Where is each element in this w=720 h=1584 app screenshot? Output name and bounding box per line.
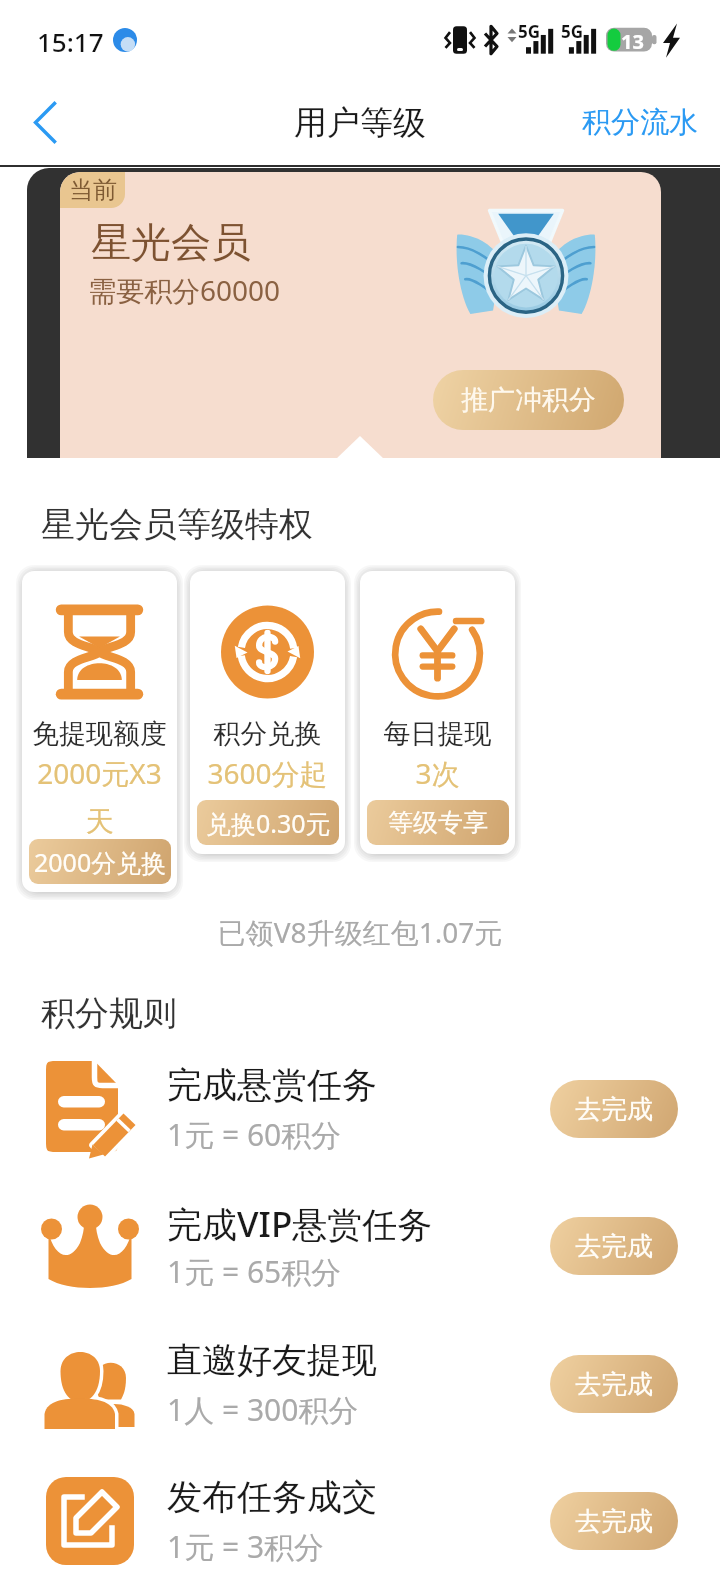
button[interactable]: Back	[0, 78, 90, 167]
button[interactable]: 免提现额度	[22, 571, 177, 892]
staticText: 用户等级	[294, 102, 426, 144]
button[interactable]: 发布任务成交	[0, 1453, 720, 1584]
staticText: 去完成	[575, 1368, 653, 1401]
staticText: 去完成	[575, 1093, 653, 1126]
staticText: 3次	[364, 754, 511, 792]
staticText: 3600分起	[194, 754, 341, 792]
staticText: 积分兑换	[190, 717, 345, 751]
staticText: 直邀好友提现	[167, 1338, 377, 1382]
button[interactable]: 当前	[60, 172, 661, 458]
staticText: 1元 = 65积分	[167, 1251, 342, 1292]
staticText: 2000元X3天	[26, 754, 173, 839]
staticText: 推广冲积分	[461, 383, 596, 417]
staticText: 1元 = 3积分	[167, 1526, 325, 1567]
staticText: 星光会员等级特权	[41, 503, 313, 546]
staticText: 等级专享	[388, 807, 488, 838]
staticText: 当前	[69, 175, 117, 205]
staticText: 1元 = 60积分	[167, 1114, 342, 1155]
staticText: 每日提现	[360, 717, 515, 751]
button[interactable]: 直邀好友提现	[0, 1316, 720, 1452]
button[interactable]: 积分流水	[582, 78, 698, 167]
button[interactable]: 去完成	[550, 1492, 678, 1550]
staticText: 5G	[518, 20, 541, 43]
staticText: 免提现额度	[22, 717, 177, 751]
staticText: 1人 = 300积分	[167, 1389, 359, 1430]
button[interactable]: 去完成	[550, 1217, 678, 1275]
button[interactable]: 积分兑换	[190, 571, 345, 854]
staticText: 积分流水	[582, 104, 698, 141]
staticText: 完成悬赏任务	[167, 1063, 377, 1107]
staticText: 发布任务成交	[167, 1475, 377, 1519]
staticText: 兑换0.30元	[206, 806, 331, 840]
staticText: 需要积分60000	[88, 271, 281, 309]
button[interactable]: 完成VIP悬赏任务	[0, 1178, 720, 1314]
staticText: 已领V8升级红包1.07元	[0, 913, 720, 951]
button[interactable]: 去完成	[550, 1080, 678, 1138]
staticText: 星光会员	[91, 217, 251, 267]
button[interactable]: 完成悬赏任务	[0, 1041, 720, 1177]
staticText: 去完成	[575, 1505, 653, 1538]
staticText: 13	[621, 28, 644, 55]
staticText: 2000分兑换	[34, 845, 167, 879]
staticText: 15:17	[37, 24, 104, 59]
staticText: 去完成	[575, 1230, 653, 1263]
staticText: 完成VIP悬赏任务	[167, 1200, 433, 1248]
button[interactable]: 每日提现	[360, 571, 515, 854]
staticText: 积分规则	[41, 992, 177, 1035]
button[interactable]: 去完成	[550, 1355, 678, 1413]
button[interactable]: 推广冲积分	[433, 370, 624, 430]
staticText: 5G	[561, 20, 584, 43]
